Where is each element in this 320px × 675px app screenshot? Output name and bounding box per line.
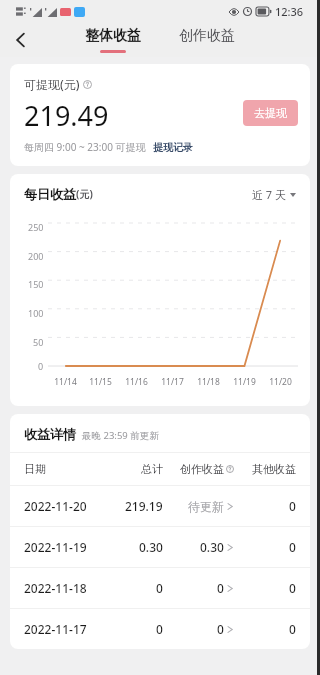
button[interactable]: 可提现(元) [10,64,310,166]
staticText: 0 [289,580,296,596]
staticText: 12:36 [275,4,304,19]
staticText: 150 [28,278,44,290]
button[interactable]: 整体收益 [81,27,145,53]
staticText: 最晚 23:59 前更新 [82,429,159,442]
staticText: 0 [217,580,224,596]
staticText: 0 [217,621,224,637]
button[interactable]: 创作收益 [175,31,239,49]
staticText: 219.19 [125,498,163,514]
staticText: 11/14 [54,376,77,388]
button[interactable]: 2022-11-17 [10,609,310,649]
button[interactable]: 2022-11-20 [10,486,310,526]
staticText: 0.30 [200,539,224,555]
staticText: 可提现(元) [24,76,80,92]
button[interactable]: 近 7 天 [252,187,296,202]
button[interactable]: 去提现 [243,100,298,126]
staticText: 0 [156,580,163,596]
button[interactable]: 提现记录 [153,141,193,154]
staticText: 11/20 [269,376,292,388]
staticText: 近 7 天 [252,187,287,202]
staticText: 0 [38,360,44,372]
staticText: 11/17 [161,376,184,388]
staticText: 11/18 [197,376,220,388]
staticText: 日期 [24,462,101,476]
staticText: 219.49 [24,97,109,134]
staticText: 提现记录 [153,141,193,154]
staticText: 其他收益 [252,462,296,476]
staticText: 11/16 [125,376,148,388]
staticText: 2022-11-18 [24,580,101,596]
staticText: 50 [33,336,44,348]
staticText: 0 [289,539,296,555]
staticText: 整体收益 [85,27,141,45]
staticText: 0 [156,621,163,637]
button[interactable]: Back [4,23,38,57]
staticText: 11/19 [233,376,256,388]
staticText: 创作收益 [180,462,224,476]
staticText: 0.30 [139,539,163,555]
staticText: 创作收益 [179,27,235,45]
staticText: 0 [289,498,296,514]
staticText: 每日收益 [24,186,76,202]
staticText: 2022-11-19 [24,539,101,555]
staticText: 总计 [141,462,163,476]
staticText: 250 [28,221,44,233]
staticText: (元) [76,187,93,201]
staticText: 每周四 9:00 ~ 23:00 可提现 [24,140,146,154]
staticText: 待更新 [188,499,224,514]
staticText: 去提现 [254,106,287,120]
staticText: 2022-11-20 [24,498,101,514]
staticText: 2022-11-17 [24,621,101,637]
button[interactable]: 2022-11-18 [10,568,310,608]
staticText: 200 [28,250,44,262]
staticText: 11/15 [89,376,112,388]
staticText: 100 [28,307,44,319]
staticText: 0 [289,621,296,637]
button[interactable]: 2022-11-19 [10,527,310,567]
staticText: 收益详情 [24,426,76,442]
